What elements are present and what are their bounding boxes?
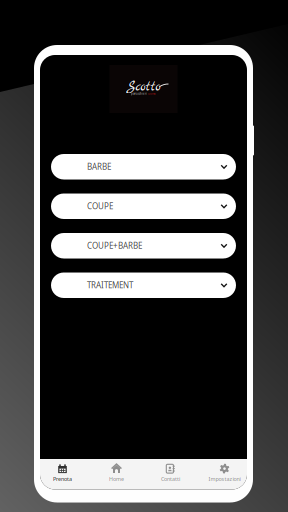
button[interactable]: Home [89,459,143,489]
button[interactable]: COUPE+BARBE [51,233,236,258]
button[interactable]: TRAITEMENT [51,272,236,298]
button[interactable]: BARBE [51,154,236,179]
staticText: Prenota [53,475,72,482]
staticText: COUPE+BARBE [87,240,142,251]
button[interactable]: Contatti [143,459,197,489]
button[interactable]: Prenota [35,459,89,489]
staticText: Contatti [161,475,180,482]
button[interactable]: COUPE [51,193,236,219]
staticText: Scotto [126,78,160,96]
staticText: uomo [148,92,156,95]
staticText: TRAITEMENT [87,280,133,290]
staticText: Home [109,475,124,482]
staticText: COUPE [87,201,113,211]
staticText: BARBE [87,161,111,172]
staticText: parrucchieri [131,92,147,95]
staticText: Impostazioni [208,475,240,482]
button[interactable]: Impostazioni [197,459,251,489]
